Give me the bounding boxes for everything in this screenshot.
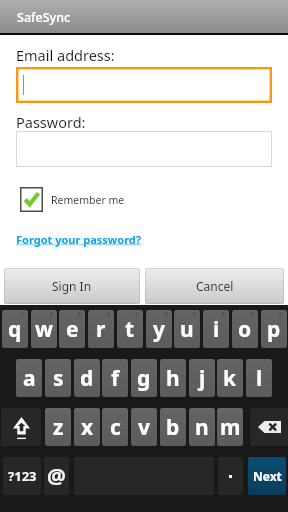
button[interactable]: Sign In [4, 268, 140, 304]
staticText: i [213, 315, 220, 344]
staticText: 7 [192, 310, 197, 320]
button[interactable]: h [160, 359, 186, 397]
button[interactable]: j [189, 359, 215, 397]
staticText: e [66, 315, 79, 344]
staticText: w [35, 315, 53, 344]
button[interactable]: Next [248, 457, 286, 495]
staticText: q [8, 315, 22, 344]
button[interactable]: k [217, 359, 243, 397]
button[interactable]: o [232, 310, 258, 348]
staticText: r [96, 315, 106, 344]
staticText: k [223, 364, 237, 393]
button[interactable]: @ [44, 457, 69, 495]
staticText: l [256, 364, 263, 393]
button[interactable]: Backspace [250, 408, 288, 446]
staticText: h [166, 364, 180, 393]
staticText: 4 [106, 310, 111, 320]
button[interactable]: r [88, 310, 114, 348]
staticText: 1 [20, 310, 25, 320]
button[interactable]: l [246, 359, 272, 397]
staticText: j [199, 364, 206, 393]
staticText: g [137, 364, 151, 393]
button[interactable]: q [2, 310, 28, 348]
button[interactable]: z [45, 408, 71, 446]
staticText: b [166, 413, 180, 442]
staticText: s [53, 364, 64, 393]
button[interactable]: n [189, 408, 215, 446]
button[interactable]: c [102, 408, 128, 446]
staticText: Email address: [16, 45, 115, 65]
button[interactable]: a [16, 359, 42, 397]
staticText: Cancel [196, 278, 234, 294]
button[interactable]: t [117, 310, 143, 348]
button[interactable]: v [131, 408, 157, 446]
staticText: Password: [16, 112, 86, 132]
button[interactable] [16, 131, 272, 167]
button[interactable]: Forgot your password? [16, 232, 142, 247]
button[interactable]: i [203, 310, 229, 348]
button[interactable]: Remember me [20, 187, 125, 212]
staticText: ?123 [8, 467, 37, 485]
staticText: p [267, 315, 281, 344]
staticText: Sign In [52, 278, 92, 294]
staticText: @ [47, 462, 66, 491]
button[interactable]: m [217, 408, 243, 446]
staticText: 5 [135, 310, 140, 320]
button[interactable]: s [45, 359, 71, 397]
staticText: z [53, 413, 64, 442]
button[interactable]: f [102, 359, 128, 397]
button[interactable]: ?123 [3, 457, 41, 495]
staticText: Remember me [51, 193, 125, 207]
button[interactable] [16, 67, 272, 103]
staticText: m [220, 413, 241, 442]
button[interactable]: d [74, 359, 100, 397]
staticText: Next [253, 468, 282, 484]
button[interactable]: x [74, 408, 100, 446]
staticText: 8 [221, 310, 226, 320]
staticText: n [195, 413, 209, 442]
button[interactable]: g [131, 359, 157, 397]
staticText: 3 [77, 310, 82, 320]
staticText: 0 [279, 310, 284, 320]
staticText: 9 [250, 310, 255, 320]
staticText: u [180, 315, 194, 344]
staticText: x [81, 413, 94, 442]
button[interactable]: Shift [1, 408, 41, 446]
staticText: o [238, 315, 252, 344]
staticText: v [138, 413, 150, 442]
button[interactable]: Cancel [145, 268, 284, 304]
staticText: y [153, 315, 165, 344]
button[interactable]: u [174, 310, 200, 348]
staticText: f [111, 364, 120, 393]
staticText: a [23, 364, 36, 393]
button[interactable]: p [261, 310, 287, 348]
staticText: t [125, 315, 135, 344]
staticText: Forgot your password? [16, 232, 142, 247]
staticText: SafeSync [17, 9, 71, 26]
button[interactable]: Period [218, 457, 243, 495]
staticText: d [80, 364, 94, 393]
staticText: 2 [49, 310, 54, 320]
button[interactable]: w [31, 310, 57, 348]
staticText: c [110, 413, 121, 442]
button[interactable]: b [160, 408, 186, 446]
button[interactable]: y [146, 310, 172, 348]
button[interactable]: e [59, 310, 85, 348]
staticText: 6 [164, 310, 169, 320]
